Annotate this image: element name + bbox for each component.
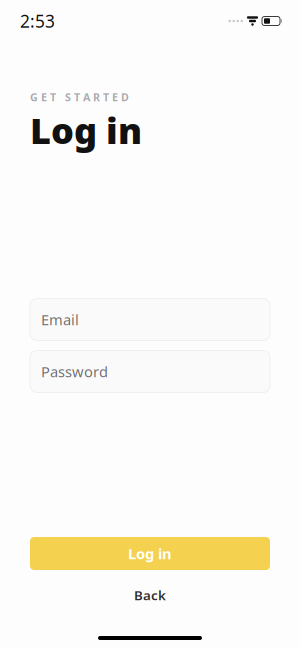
staticText: Back bbox=[134, 586, 166, 604]
staticText: Password bbox=[41, 362, 108, 381]
staticText: Log in bbox=[128, 544, 172, 563]
button[interactable]: Back bbox=[30, 580, 270, 610]
staticText: G E T S T A R T E D bbox=[30, 90, 129, 104]
staticText: 2:53 bbox=[20, 9, 55, 32]
staticText: Log in bbox=[30, 106, 142, 154]
button[interactable]: Log in bbox=[30, 537, 270, 570]
staticText: Email bbox=[41, 310, 79, 329]
button[interactable]: Password bbox=[30, 350, 270, 392]
button[interactable]: Email bbox=[30, 298, 270, 340]
